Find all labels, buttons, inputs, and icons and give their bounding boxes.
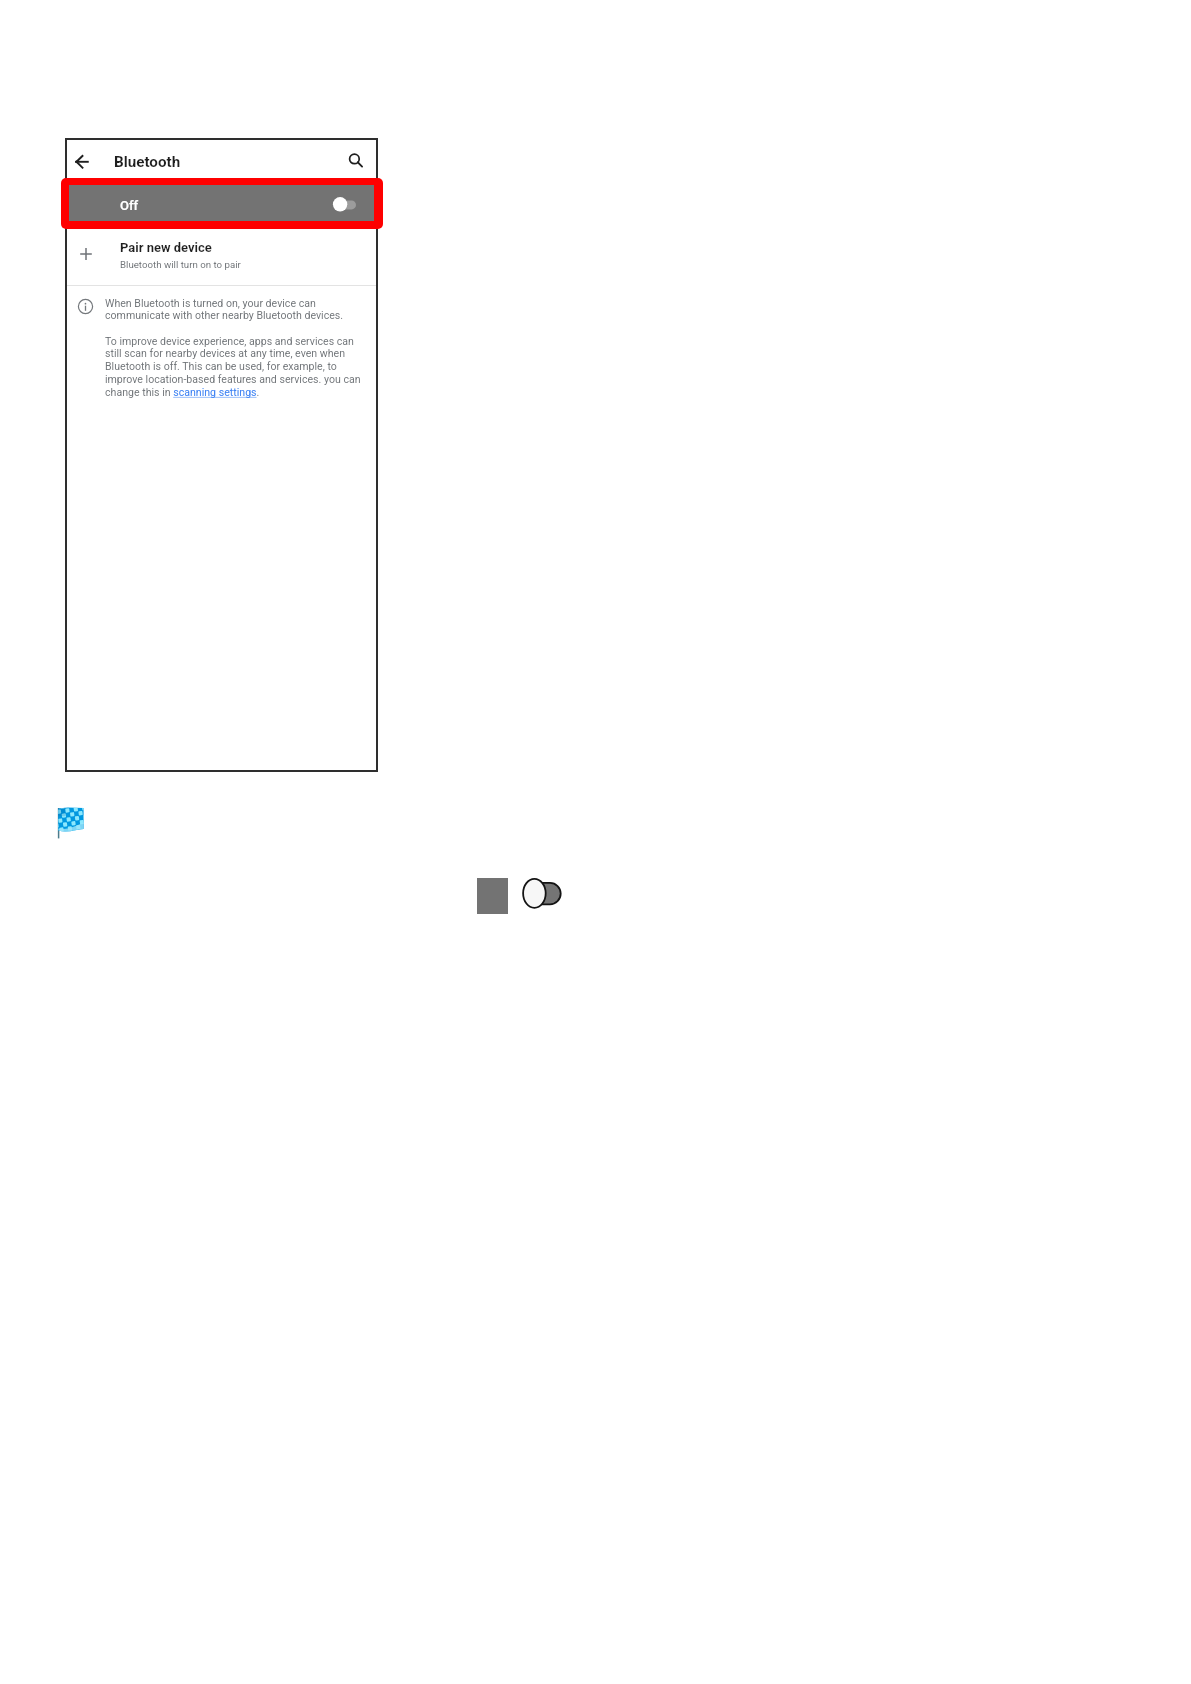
button[interactable]: Back [67, 146, 97, 176]
staticText: Bluetooth [114, 153, 181, 171]
button[interactable]: Bluetooth off, toggle [330, 194, 360, 214]
staticText: Pair new device [120, 240, 212, 255]
button[interactable] [67, 229, 376, 285]
staticText: To improve device experience, apps and s… [105, 335, 363, 399]
button[interactable]: Search [340, 146, 368, 174]
staticText: Off [120, 198, 139, 213]
staticText: When Bluetooth is turned on, your device… [105, 297, 363, 322]
staticText: Bluetooth will turn on to pair [120, 259, 241, 270]
button[interactable]: Off [69, 185, 374, 221]
